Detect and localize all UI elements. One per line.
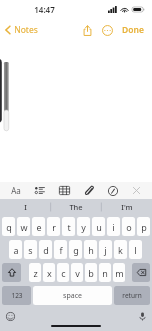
staticText: The: [69, 202, 83, 212]
button[interactable]: Text format: [8, 183, 24, 198]
button[interactable]: b: [85, 263, 97, 282]
staticText: return: [122, 291, 142, 300]
staticText: I'm: [121, 202, 133, 212]
button[interactable]: e: [32, 217, 45, 236]
button[interactable]: Table: [56, 184, 73, 197]
button[interactable]: I: [0, 199, 50, 215]
staticText: v: [75, 267, 80, 279]
button[interactable]: Shift: [2, 263, 21, 282]
button[interactable]: space: [33, 286, 112, 305]
staticText: k: [118, 244, 123, 256]
button[interactable]: k: [114, 240, 127, 259]
button[interactable]: g: [69, 240, 82, 259]
staticText: r: [52, 221, 56, 233]
staticText: l: [134, 244, 137, 256]
staticText: o: [126, 221, 132, 233]
staticText: f: [59, 244, 63, 256]
button[interactable]: Done: [118, 22, 148, 38]
button[interactable]: The: [50, 199, 101, 215]
staticText: e: [36, 221, 42, 233]
button[interactable]: v: [71, 263, 83, 282]
button[interactable]: More: [99, 23, 116, 38]
staticText: 123: [11, 291, 23, 300]
staticText: Done: [122, 24, 144, 36]
staticText: a: [13, 244, 19, 256]
staticText: m: [115, 267, 124, 279]
button[interactable]: Notes: [0, 21, 44, 39]
button[interactable]: p: [137, 217, 150, 236]
staticText: g: [73, 244, 79, 256]
button[interactable]: I'm: [101, 199, 152, 215]
staticText: j: [104, 244, 107, 256]
staticText: x: [47, 267, 52, 279]
button[interactable]: i: [107, 217, 120, 236]
staticText: n: [102, 267, 108, 279]
staticText: Notes: [14, 24, 38, 36]
button[interactable]: l: [129, 240, 142, 259]
button[interactable]: Close: [129, 184, 144, 197]
button[interactable]: w: [17, 217, 30, 236]
staticText: u: [96, 221, 102, 233]
staticText: b: [88, 267, 94, 279]
button[interactable]: f: [54, 240, 67, 259]
staticText: I: [24, 202, 27, 212]
button[interactable]: Emoji: [3, 309, 18, 324]
button[interactable]: Share: [79, 23, 96, 38]
button[interactable]: s: [24, 240, 37, 259]
button[interactable]: j: [99, 240, 112, 259]
button[interactable]: a: [9, 240, 22, 259]
staticText: q: [6, 221, 12, 233]
button[interactable]: return: [114, 286, 150, 305]
staticText: w: [20, 221, 28, 233]
staticText: y: [81, 221, 86, 233]
button[interactable]: Backspace: [132, 263, 150, 282]
staticText: p: [141, 221, 147, 233]
button[interactable]: 123: [2, 286, 31, 305]
button[interactable]: Dictation: [136, 309, 149, 324]
button[interactable]: t: [62, 217, 75, 236]
button[interactable]: d: [39, 240, 52, 259]
staticText: 14:47: [34, 4, 55, 15]
button[interactable]: z: [29, 263, 41, 282]
staticText: h: [88, 244, 94, 256]
staticText: Aa: [11, 185, 21, 196]
button[interactable]: u: [92, 217, 105, 236]
button[interactable]: o: [122, 217, 135, 236]
staticText: c: [61, 267, 66, 279]
button[interactable]: h: [84, 240, 97, 259]
staticText: t: [67, 221, 71, 233]
staticText: s: [28, 244, 33, 256]
button[interactable]: y: [77, 217, 90, 236]
button[interactable]: q: [2, 217, 15, 236]
button[interactable]: Markup: [105, 184, 121, 198]
button[interactable]: m: [113, 263, 125, 282]
button[interactable]: x: [43, 263, 55, 282]
button[interactable]: n: [99, 263, 111, 282]
staticText: i: [112, 221, 115, 233]
button[interactable]: Attach: [82, 184, 97, 198]
button[interactable]: Checklist: [32, 184, 48, 197]
staticText: d: [43, 244, 49, 256]
staticText: z: [33, 267, 38, 279]
staticText: space: [63, 291, 82, 301]
button[interactable]: r: [47, 217, 60, 236]
button[interactable]: c: [57, 263, 69, 282]
